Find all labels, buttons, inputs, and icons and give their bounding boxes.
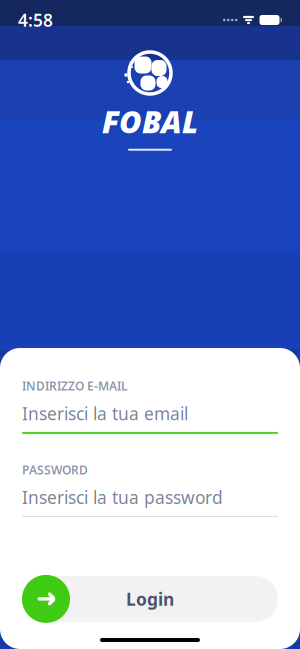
- staticText: Inserisci la tua password: [22, 486, 223, 509]
- staticText: Inserisci la tua email: [22, 402, 188, 425]
- staticText: PASSWORD: [22, 462, 88, 478]
- staticText: FOBAL: [102, 101, 198, 142]
- staticText: Login: [126, 587, 174, 610]
- staticText: INDIRIZZO E-MAIL: [22, 378, 128, 394]
- button[interactable]: Inserisci la tua email: [22, 394, 278, 434]
- button[interactable]: Login: [22, 575, 278, 623]
- staticText: 4:58: [18, 8, 53, 31]
- button[interactable]: Inserisci la tua password: [22, 478, 278, 517]
